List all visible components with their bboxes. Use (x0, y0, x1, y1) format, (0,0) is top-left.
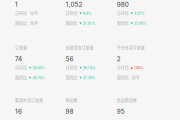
staticText: 日环比 (15, 65, 27, 71)
staticText: 渠道外卖订单量 (15, 98, 43, 103)
staticText: 95 (117, 108, 125, 115)
staticText: 周同比 (15, 75, 27, 81)
staticText: 饮品商品数 (117, 98, 137, 103)
staticText: 4.37% (134, 11, 145, 16)
staticText: 平台外卖订单量 (117, 45, 145, 51)
staticText: 日环比 (66, 10, 78, 16)
staticText: 持平 (30, 10, 38, 16)
staticText: 16 (15, 108, 22, 115)
staticText: 980 (117, 0, 129, 8)
staticText: 2 (117, 55, 121, 63)
staticText: 36.75% (32, 76, 45, 80)
staticText: 日环比 (117, 65, 129, 71)
staticText: 100% (134, 66, 144, 70)
staticText: 28.85% (32, 66, 45, 70)
staticText: 订单量 (15, 45, 27, 51)
staticText: 持平 (30, 20, 38, 26)
staticText: 日环比 (15, 10, 27, 16)
staticText: 31.01% (83, 21, 96, 26)
staticText: 周同比 (66, 20, 78, 26)
staticText: 周同比 (117, 20, 129, 26)
staticText: 74 (15, 55, 22, 63)
staticText: 周同比 (15, 20, 27, 26)
staticText: 自提堂食订单量 (66, 45, 94, 51)
staticText: 周同比 (66, 75, 78, 81)
staticText: 1,052 (66, 0, 83, 8)
staticText: 周同比 (117, 75, 129, 81)
staticText: 27.95% (134, 21, 147, 26)
staticText: 持平 (132, 75, 140, 81)
staticText: 1 (15, 0, 18, 8)
staticText: 8.9% (83, 11, 92, 16)
staticText: 98 (66, 108, 74, 115)
staticText: 39.13% (83, 66, 96, 70)
staticText: 56 (66, 55, 74, 63)
staticText: 37.78% (83, 76, 96, 80)
staticText: 商品数 (66, 98, 78, 103)
staticText: 日环比 (117, 10, 129, 16)
staticText: 日环比 (66, 65, 78, 71)
